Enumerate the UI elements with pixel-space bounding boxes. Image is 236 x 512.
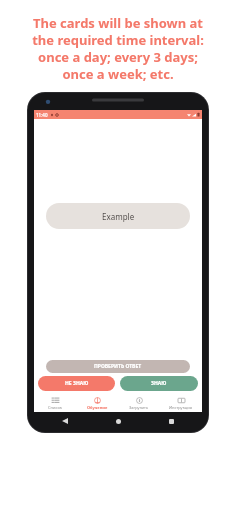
button[interactable]: Загрузить [118,394,160,412]
staticText: 11:40 [36,112,48,118]
button[interactable]: Список [34,394,76,412]
button[interactable]: Обучение [76,394,118,412]
staticText: Список [48,405,62,410]
staticText: Example [102,211,135,222]
button[interactable]: Example [46,203,190,229]
button[interactable]: НЕ ЗНАЮ [38,376,115,391]
staticText: Инструкция [169,405,193,410]
button[interactable]: ПРОВЕРИТЬ ОТВЕТ [46,360,190,373]
button[interactable]: Recents [164,414,178,428]
staticText: ПРОВЕРИТЬ ОТВЕТ [94,363,142,370]
button[interactable]: ЗНАЮ [120,376,198,391]
staticText: Обучение [87,405,108,410]
button[interactable]: Back [58,414,72,428]
staticText: ЗНАЮ [151,380,167,387]
button[interactable]: Home [111,414,125,428]
button[interactable]: Инструкция [160,394,202,412]
staticText: НЕ ЗНАЮ [65,380,89,387]
staticText: The cards will be shown at the required … [0,14,236,83]
staticText: Загрузить [129,405,149,410]
